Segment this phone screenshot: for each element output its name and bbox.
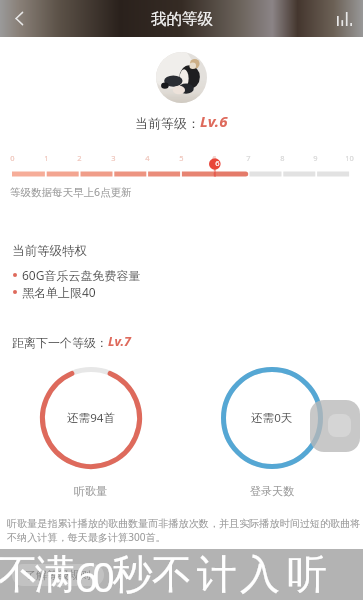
staticText: 7 xyxy=(246,153,251,163)
staticText: 4 xyxy=(145,153,150,163)
staticText: 听歌量是指累计播放的歌曲数量而非播放次数，并且实际播放时间过短的歌曲将 不纳入计… xyxy=(7,517,361,544)
staticText: 不 xyxy=(152,549,192,599)
staticText: 黑名单上限40 xyxy=(22,284,96,300)
button[interactable]: Back xyxy=(0,0,38,37)
staticText: 登录天数 xyxy=(250,484,294,498)
staticText: 距离下一个等级： xyxy=(12,335,108,350)
staticText: 入 xyxy=(240,549,280,599)
staticText: 秒 xyxy=(112,549,152,599)
staticText: 计 xyxy=(197,549,237,599)
staticText: 满 xyxy=(35,549,75,599)
staticText: 6 xyxy=(212,153,217,163)
staticText: 不 xyxy=(0,549,38,599)
staticText: 8 xyxy=(280,153,285,163)
staticText: Lv.6 xyxy=(200,111,228,131)
staticText: 3 xyxy=(111,153,116,163)
staticText: 听歌量 xyxy=(74,484,107,498)
staticText: 了解等级规则 xyxy=(25,568,91,582)
button[interactable]: Now playing xyxy=(325,0,363,37)
staticText: Lv.7 xyxy=(108,333,131,350)
button[interactable]: Assistive touch xyxy=(310,400,360,452)
staticText: 当前等级： xyxy=(135,115,200,131)
staticText: 听 xyxy=(287,549,327,599)
staticText: 还需0天 xyxy=(251,410,293,426)
staticText: 5 xyxy=(179,153,184,163)
staticText: 1 xyxy=(44,153,49,163)
staticText: 0 xyxy=(92,549,115,600)
staticText: 等级数据每天早上6点更新 xyxy=(10,185,132,199)
staticText: 我的等级 xyxy=(151,9,213,29)
staticText: 60G音乐云盘免费容量 xyxy=(22,267,141,283)
staticText: 10 xyxy=(345,153,354,163)
staticText: 还需94首 xyxy=(67,410,116,426)
staticText: 0 xyxy=(10,153,15,163)
staticText: 6 xyxy=(75,549,98,600)
button[interactable]: 了解等级规则 xyxy=(12,564,104,586)
staticText: 6 xyxy=(215,158,220,168)
staticText: 当前等级特权 xyxy=(12,243,87,259)
staticText: 9 xyxy=(313,153,318,163)
staticText: 2 xyxy=(77,153,82,163)
